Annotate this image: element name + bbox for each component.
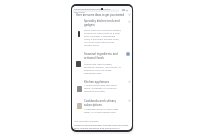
button[interactable]	[73, 51, 130, 77]
staticText: Every chef has a favorite gadget, so why…	[84, 28, 122, 46]
staticText: Cleaners and technology: Kitchen tools a…	[74, 123, 129, 130]
staticText: You can also consider:	[74, 119, 106, 122]
button[interactable]	[73, 13, 129, 17]
button[interactable]: Assistant	[126, 52, 130, 56]
staticText: Kitchen appliances	[84, 80, 122, 84]
button[interactable]	[73, 79, 130, 97]
staticText: Here are some ideas to get you started	[76, 13, 128, 17]
button[interactable]	[73, 18, 130, 47]
staticText: Things like fresh truffles, artisanal ch…	[84, 62, 122, 74]
staticText: Seasonal ingredients and artisanal foods	[84, 52, 122, 60]
staticText: vanessasmithphoto.com/holiday-gift-guide	[74, 7, 114, 13]
staticText: A beautiful book to spark new ideas, or …	[84, 107, 122, 113]
staticText: A stand mixer with the latest finish, a …	[84, 83, 122, 92]
staticText: Cookbooks and culinary subscriptions	[84, 99, 122, 107]
button[interactable]	[73, 98, 130, 116]
staticText: Specialty kitchen tools and gadgets	[84, 19, 122, 27]
